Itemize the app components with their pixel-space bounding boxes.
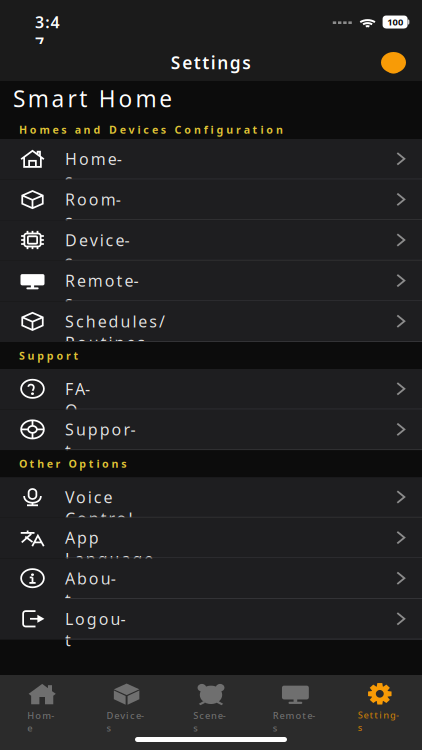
staticText: 3:47 bbox=[35, 11, 70, 33]
button[interactable]: Home bbox=[0, 680, 84, 724]
staticText: 100 bbox=[387, 16, 403, 28]
staticText: Schedules/Routines bbox=[65, 311, 247, 332]
button[interactable]: Devices bbox=[84, 680, 169, 724]
staticText: Support bbox=[19, 348, 79, 363]
button[interactable]: Schedules/Routines bbox=[0, 301, 422, 342]
staticText: Remotes bbox=[273, 709, 318, 722]
staticText: FAQ bbox=[65, 378, 99, 399]
staticText: Voice Control bbox=[65, 486, 188, 508]
button[interactable]: Voice Control bbox=[0, 477, 422, 518]
staticText: Devices bbox=[65, 229, 134, 251]
staticText: App Language bbox=[65, 527, 195, 548]
staticText: Other Options bbox=[19, 457, 126, 471]
staticText: Remotes bbox=[65, 270, 143, 291]
staticText: Home bbox=[27, 709, 57, 722]
button[interactable]: Homes bbox=[0, 139, 422, 180]
button[interactable]: Logout bbox=[0, 599, 422, 640]
button[interactable]: Support bbox=[0, 410, 422, 450]
staticText: Devices bbox=[106, 709, 147, 722]
staticText: Scenes bbox=[193, 709, 229, 722]
button[interactable]: Account bbox=[374, 45, 413, 80]
button[interactable]: Remotes bbox=[253, 680, 338, 724]
staticText: Settings bbox=[358, 709, 402, 721]
staticText: About bbox=[65, 568, 119, 589]
button[interactable]: App Language bbox=[0, 518, 422, 558]
button[interactable]: Devices bbox=[0, 220, 422, 261]
staticText: Homes and Devices Configuration bbox=[19, 122, 283, 137]
button[interactable]: Remotes bbox=[0, 261, 422, 301]
staticText: Rooms bbox=[65, 189, 126, 210]
staticText: Logout bbox=[65, 608, 128, 629]
button[interactable]: About bbox=[0, 558, 422, 599]
button[interactable]: Scenes bbox=[169, 680, 253, 724]
button[interactable]: Rooms bbox=[0, 180, 422, 220]
button[interactable]: FAQ bbox=[0, 369, 422, 410]
staticText: Support bbox=[65, 419, 138, 440]
staticText: Homes bbox=[65, 148, 127, 169]
button[interactable]: Settings bbox=[338, 680, 422, 724]
staticText: Smart Home bbox=[13, 83, 172, 113]
staticText: Settings bbox=[171, 51, 251, 74]
